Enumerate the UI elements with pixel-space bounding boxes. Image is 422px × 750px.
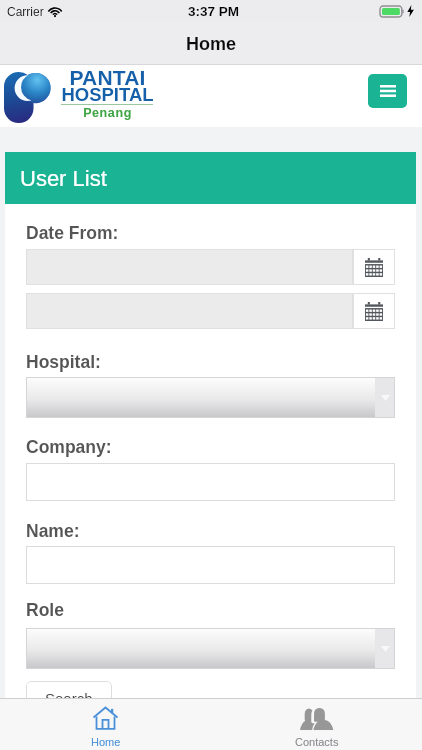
button[interactable]: Pick date — [353, 249, 395, 285]
button[interactable]: Contacts — [211, 698, 422, 750]
staticText: Contacts — [295, 736, 339, 748]
staticText: Home — [186, 34, 237, 54]
button[interactable]: Menu — [368, 74, 407, 108]
staticText: Penang — [83, 106, 132, 120]
button[interactable]: Pick date — [353, 293, 395, 329]
staticText: User List — [20, 166, 107, 191]
button[interactable] — [26, 546, 395, 584]
staticText: Home — [91, 736, 121, 748]
staticText: 3:37 PM — [188, 4, 240, 19]
staticText: Name: — [26, 521, 80, 541]
staticText: Carrier — [7, 5, 44, 18]
button[interactable]: Search — [26, 681, 112, 715]
staticText: HOSPITAL — [61, 84, 154, 105]
button[interactable] — [26, 463, 395, 501]
staticText: Hospital: — [26, 352, 101, 372]
button[interactable]: Home — [0, 698, 211, 750]
staticText: Search — [45, 690, 93, 707]
staticText: Company: — [26, 437, 112, 457]
button[interactable] — [26, 377, 395, 418]
staticText: Date From: — [26, 223, 119, 243]
staticText: PANTAI — [69, 66, 146, 89]
staticText: Role — [26, 600, 64, 620]
button[interactable] — [26, 628, 395, 669]
